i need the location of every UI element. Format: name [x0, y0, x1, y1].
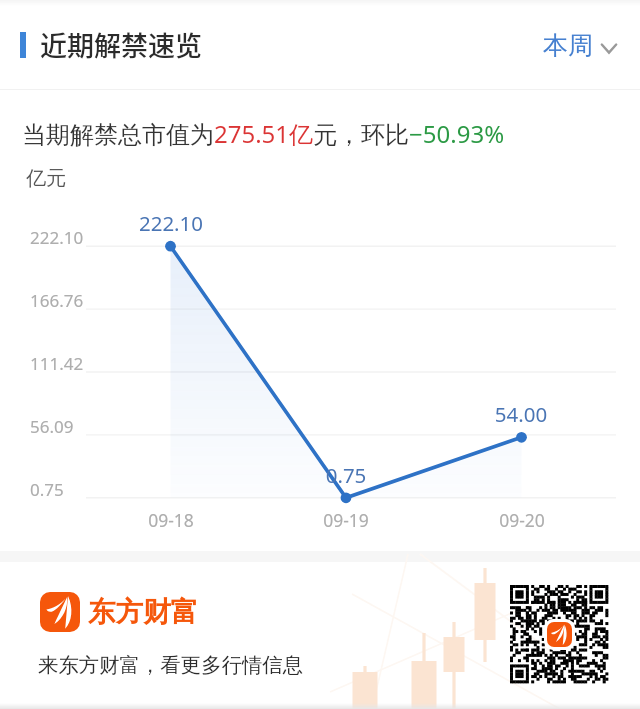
button[interactable]: Select period: This week	[543, 30, 617, 61]
staticText: 09-20	[462, 508, 582, 532]
staticText: 亿元	[26, 166, 66, 191]
staticText: 近期解禁速览	[40, 25, 202, 64]
staticText: 东方财富	[88, 595, 198, 630]
button[interactable]: 东方财富 来东方财富，看更多行情信息	[0, 562, 640, 709]
staticText: 222.10	[91, 209, 251, 237]
staticText: 来东方财富，看更多行情信息	[38, 652, 304, 678]
staticText: 111.42	[30, 352, 84, 375]
staticText: 09-19	[286, 508, 406, 532]
staticText: 本周	[543, 30, 593, 61]
staticText: 54.00	[441, 400, 601, 428]
staticText: 166.76	[30, 289, 84, 312]
staticText: 0.75	[266, 461, 426, 489]
staticText: 0.75	[30, 478, 64, 501]
staticText: 56.09	[30, 415, 74, 438]
staticText: 09-18	[111, 508, 231, 532]
staticText: 222.10	[30, 226, 84, 249]
staticText: 当期解禁总市值为275.51亿元，环比−50.93%	[22, 117, 505, 150]
button[interactable]: 近期解禁速览	[20, 25, 188, 65]
